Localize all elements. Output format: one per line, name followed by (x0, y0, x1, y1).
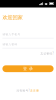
staticText: 忘记密码? (41, 52, 54, 55)
staticText: 欢迎回家 (2, 14, 22, 21)
staticText: 请输入密码 (2, 43, 17, 46)
staticText: 没有账号? (17, 89, 30, 92)
staticText: 请输入手机号 (2, 33, 20, 36)
button[interactable]: 去注册 (30, 88, 39, 93)
button[interactable]: 忘记密码? (39, 51, 54, 56)
button[interactable]: 登 录 (2, 65, 54, 72)
staticText: 登 录 (23, 66, 33, 71)
staticText: 去注册 (30, 89, 39, 92)
